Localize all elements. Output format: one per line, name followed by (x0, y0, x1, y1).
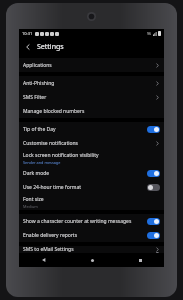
button[interactable]: Applications (19, 58, 164, 72)
staticText: Customise notifications (23, 140, 155, 147)
staticText: Show a character counter at writing mess… (23, 218, 144, 225)
button[interactable]: Show a character counter at writing mess… (19, 214, 164, 228)
staticText: Manage blocked numbers (23, 108, 160, 115)
staticText: Use 24-hour time format (23, 184, 144, 191)
staticText: Applications (23, 62, 155, 69)
button[interactable]: Use 24-hour time format (19, 180, 164, 194)
staticText: Lock screen notification visibility (23, 152, 99, 159)
staticText: Anti-Phishing (23, 80, 155, 87)
staticText: Enable delivery reports (23, 232, 144, 239)
button[interactable]: Home (68, 253, 116, 267)
staticText: 10:31 (22, 31, 33, 36)
button[interactable]: Back (19, 38, 37, 55)
button[interactable]: Dark mode (19, 166, 164, 180)
button[interactable]: Font size (19, 194, 164, 210)
staticText: Dark mode (23, 170, 144, 177)
staticText: Tip of the Day (23, 126, 144, 133)
staticText: SMS Filter (23, 94, 155, 101)
staticText: Sender and message (23, 160, 61, 165)
staticText: Font size (23, 196, 44, 203)
button[interactable]: Recent apps (116, 253, 164, 267)
button[interactable]: Customise notifications (19, 136, 164, 150)
staticText: Medium (23, 204, 38, 209)
staticText: Settings (37, 42, 64, 52)
button[interactable]: Lock screen notification visibility (19, 150, 164, 166)
staticText: 96 (147, 31, 152, 36)
button[interactable]: Anti-Phishing (19, 76, 164, 90)
button[interactable]: Tip of the Day (19, 122, 164, 136)
button[interactable]: SMS Filter (19, 90, 164, 104)
button[interactable]: Back (19, 253, 68, 267)
button[interactable]: Enable delivery reports (19, 228, 164, 242)
staticText: SMS to eMail Settings (23, 246, 155, 253)
button[interactable]: Manage blocked numbers (19, 104, 164, 118)
button[interactable]: SMS to eMail Settings (19, 246, 164, 253)
